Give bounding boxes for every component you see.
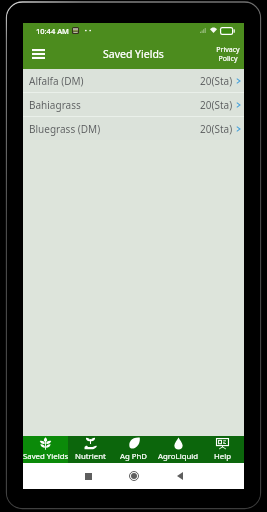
button[interactable]: Alfalfa (DM) — [23, 69, 244, 92]
staticText: 10:44 AM — [36, 26, 69, 36]
staticText: AgroLiquid — [158, 451, 199, 462]
button[interactable]: Nutrient — [68, 436, 112, 463]
button[interactable]: Back — [169, 465, 191, 487]
staticText: Privacy Policy — [216, 45, 240, 63]
staticText: 20(Sta) — [200, 122, 233, 136]
button[interactable]: Recents — [77, 465, 99, 487]
staticText: 20(Sta) — [200, 74, 233, 88]
button[interactable]: Menu — [27, 43, 49, 65]
button[interactable]: AgroLiquid — [156, 436, 200, 463]
staticText: Ag PhD — [120, 451, 148, 462]
staticText: Saved Yields — [23, 451, 68, 462]
staticText: Nutrient — [75, 451, 106, 462]
staticText: Saved Yields — [103, 47, 164, 61]
button[interactable]: Bluegrass (DM) — [23, 117, 244, 140]
staticText: Bluegrass (DM) — [29, 122, 101, 136]
staticText: Alfalfa (DM) — [29, 74, 84, 88]
button[interactable]: Home — [123, 465, 145, 487]
staticText: 20(Sta) — [200, 98, 233, 112]
button[interactable]: Privacy Policy — [216, 45, 244, 63]
button[interactable]: Ag PhD — [112, 436, 156, 463]
button[interactable]: Help — [200, 436, 244, 463]
staticText: Bahiagrass — [29, 98, 81, 112]
button[interactable]: Bahiagrass — [23, 93, 244, 116]
button[interactable]: Saved Yields — [23, 436, 68, 463]
staticText: Help — [214, 451, 231, 462]
